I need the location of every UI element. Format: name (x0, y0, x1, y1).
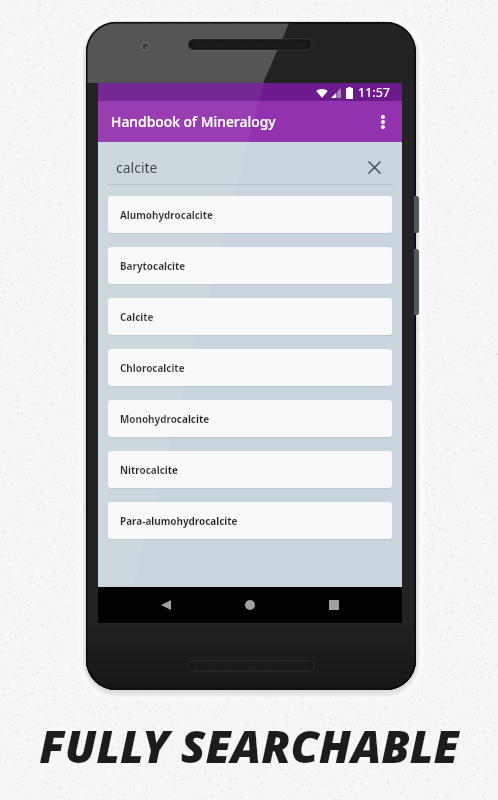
staticText: Monohydrocalcite (120, 412, 210, 425)
staticText: Chlorocalcite (120, 361, 185, 374)
button[interactable]: Home (232, 587, 268, 623)
button[interactable]: Clear search (354, 142, 402, 184)
staticText: Handbook of Mineralogy (111, 112, 366, 131)
button[interactable]: calcite (98, 142, 402, 184)
button[interactable]: Chlorocalcite (108, 349, 392, 386)
staticText: Alumohydrocalcite (120, 208, 214, 221)
staticText: 11:57 (358, 84, 390, 101)
staticText: calcite (116, 158, 354, 177)
button[interactable]: Nitrocalcite (108, 451, 392, 488)
staticText: Calcite (120, 310, 154, 323)
button[interactable]: Recents (316, 587, 352, 623)
button[interactable]: Back (148, 587, 184, 623)
button[interactable]: Calcite (108, 298, 392, 335)
staticText: Barytocalcite (120, 259, 186, 272)
button[interactable]: Monohydrocalcite (108, 400, 392, 437)
button[interactable]: Barytocalcite (108, 247, 392, 284)
button[interactable]: More options (366, 101, 402, 142)
staticText: Nitrocalcite (120, 463, 178, 476)
button[interactable]: Alumohydrocalcite (108, 196, 392, 233)
staticText: Para-alumohydrocalcite (120, 514, 238, 527)
staticText: FULLY SEARCHABLE (39, 715, 459, 776)
button[interactable]: Para-alumohydrocalcite (108, 502, 392, 539)
